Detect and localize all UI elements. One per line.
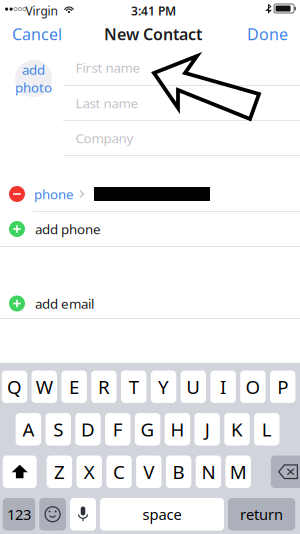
staticText: add email [35, 295, 94, 312]
staticText: phone [34, 185, 74, 203]
button[interactable]: First name [0, 50, 300, 85]
staticText: return [240, 504, 283, 524]
staticText: Done [247, 23, 288, 45]
button[interactable]: N [196, 455, 221, 488]
button[interactable]: X [76, 455, 102, 488]
staticText: N [201, 459, 215, 484]
button[interactable]: New Contact [93, 20, 213, 48]
staticText: V [143, 459, 154, 484]
staticText: Y [158, 374, 169, 399]
button[interactable]: P [270, 370, 295, 403]
button[interactable]: U [181, 370, 206, 403]
button[interactable]: A [16, 413, 41, 445]
staticText: Last name [75, 94, 138, 112]
staticText: M [230, 459, 247, 484]
button[interactable]: B [166, 455, 191, 488]
staticText: First name [75, 59, 140, 76]
staticText: Z [54, 459, 65, 484]
staticText: Cancel [12, 23, 62, 45]
button[interactable]: Shift [3, 455, 37, 488]
button[interactable]: J [194, 413, 220, 445]
button[interactable]: Z [47, 455, 72, 488]
staticText: space [142, 504, 181, 524]
staticText: O [245, 374, 260, 399]
staticText: U [186, 374, 200, 399]
button[interactable]: return [228, 498, 295, 530]
button[interactable]: Remove phone [0, 177, 25, 211]
button[interactable]: T [121, 370, 146, 403]
button[interactable]: phone [25, 177, 85, 211]
button[interactable]: Dictate [70, 498, 96, 530]
button[interactable]: F [105, 413, 130, 445]
button[interactable]: L [254, 413, 279, 445]
button[interactable]: Emoji [39, 498, 66, 530]
staticText: S [53, 417, 63, 442]
button[interactable]: K [224, 413, 250, 445]
button[interactable]: O [240, 370, 266, 403]
staticText: C [113, 459, 125, 484]
staticText: 123 [7, 504, 31, 524]
staticText: photo [15, 78, 52, 96]
button[interactable]: Q [2, 370, 27, 403]
staticText: add [22, 61, 45, 78]
staticText: B [173, 459, 185, 484]
staticText: R [98, 374, 110, 399]
staticText: L [262, 417, 272, 442]
staticText: F [113, 417, 123, 442]
staticText: W [36, 374, 53, 399]
button[interactable]: E [61, 370, 87, 403]
staticText: 3:41 PM [131, 3, 176, 19]
button[interactable]: Cancel [12, 20, 68, 48]
staticText: H [170, 417, 184, 442]
staticText: Q [7, 374, 22, 399]
button[interactable]: H [165, 413, 190, 445]
button[interactable]: V [136, 455, 161, 488]
button[interactable]: space [100, 498, 224, 530]
staticText: add phone [35, 220, 101, 238]
button[interactable]: I [210, 370, 236, 403]
button[interactable]: G [135, 413, 160, 445]
staticText: P [277, 374, 288, 399]
staticText: A [22, 417, 34, 442]
staticText: G [141, 417, 155, 442]
staticText: T [129, 374, 139, 399]
button[interactable]: add [15, 60, 52, 97]
button[interactable]: D [75, 413, 101, 445]
button[interactable]: Last name [0, 86, 300, 120]
staticText: Virgin [25, 3, 57, 19]
button[interactable]: add phone [0, 212, 300, 246]
staticText: D [81, 417, 95, 442]
staticText: E [69, 374, 79, 399]
button[interactable]: 123 [3, 498, 35, 530]
button[interactable]: Delete [271, 455, 300, 488]
button[interactable]: add email [0, 289, 300, 318]
button[interactable]: Y [151, 370, 176, 403]
staticText: X [84, 459, 95, 484]
button[interactable]: C [106, 455, 132, 488]
staticText: New Contact [104, 23, 202, 45]
staticText: J [205, 417, 210, 442]
staticText: K [231, 417, 243, 442]
button[interactable]: S [45, 413, 71, 445]
staticText: Company [75, 129, 133, 147]
button[interactable]: R [91, 370, 117, 403]
staticText: I [220, 374, 226, 399]
button[interactable]: W [32, 370, 57, 403]
button[interactable]: M [225, 455, 251, 488]
button[interactable]: Company [0, 121, 300, 155]
button[interactable]: Done [238, 20, 288, 48]
